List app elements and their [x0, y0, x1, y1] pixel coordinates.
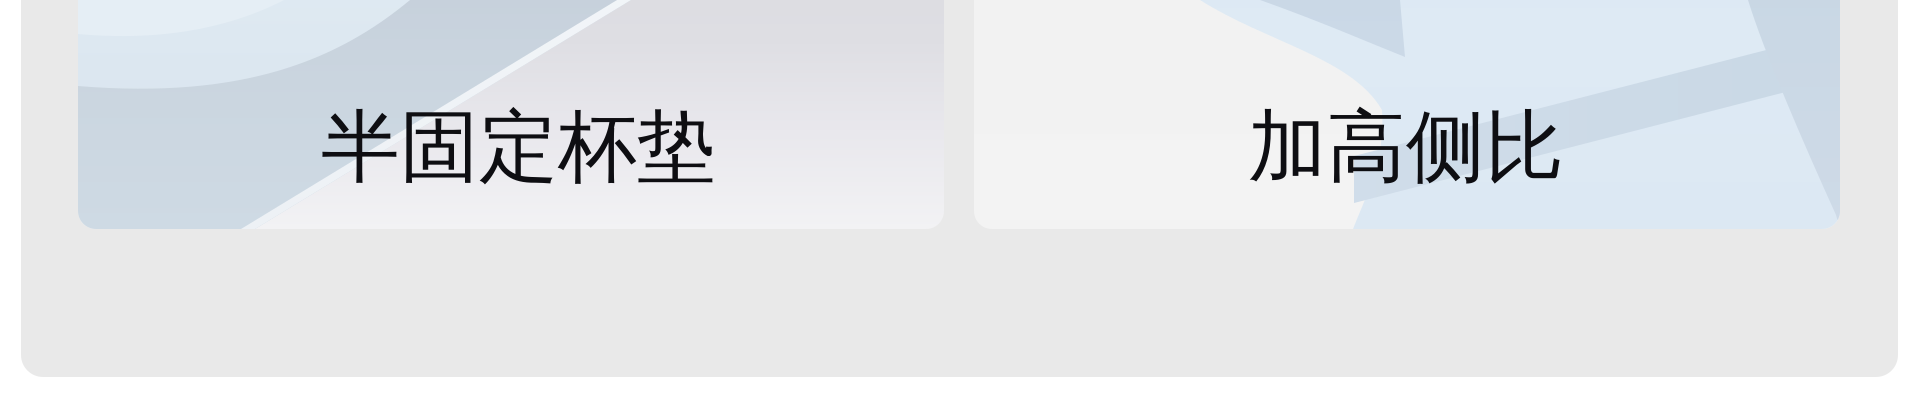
staticText: 加高侧比 [1248, 99, 1564, 196]
button[interactable]: 加高侧比 [0, 0, 866, 379]
button[interactable]: 半固定杯垫 [0, 0, 866, 379]
staticText: 半固定杯垫 [321, 99, 716, 196]
